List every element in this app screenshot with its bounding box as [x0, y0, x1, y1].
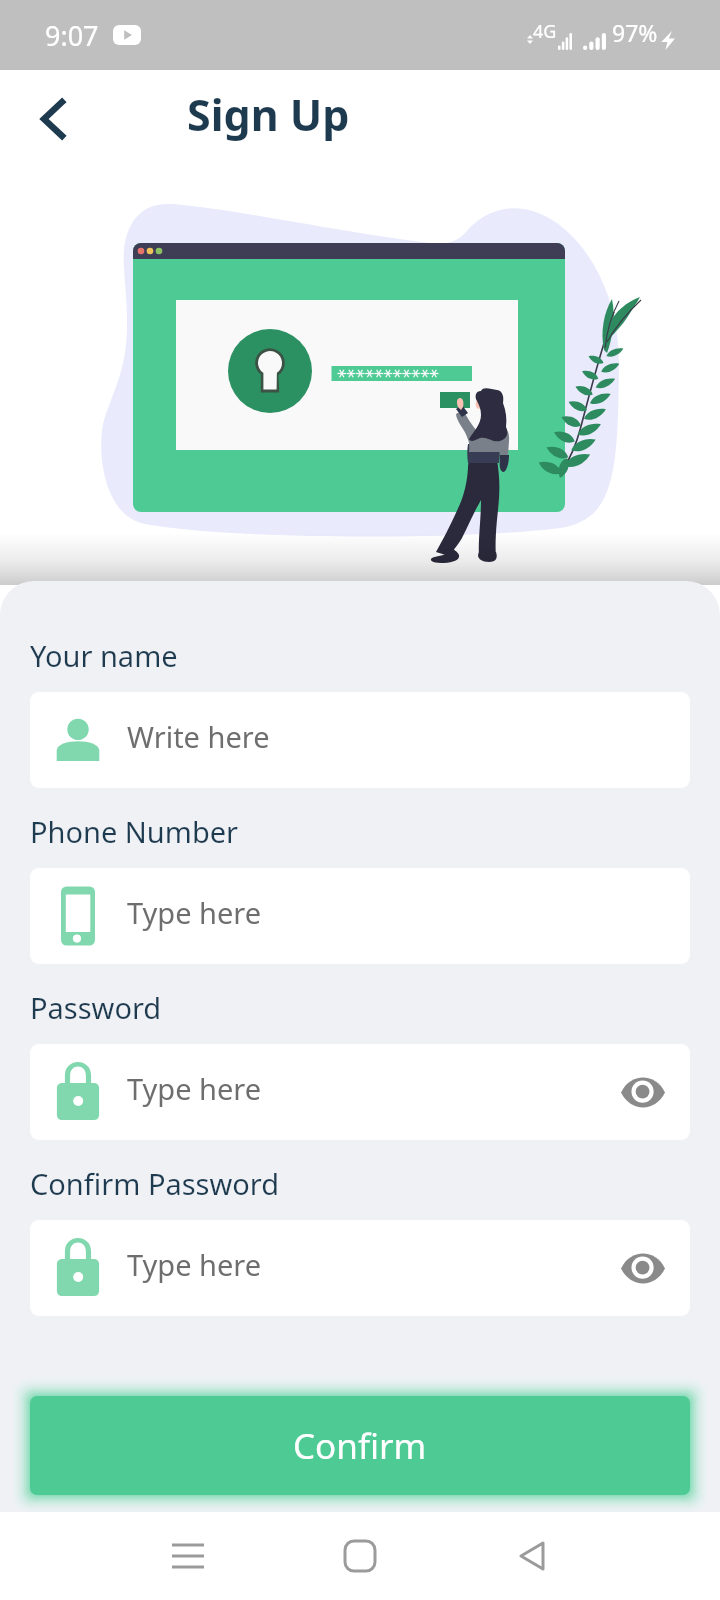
button[interactable]: Back [496, 1512, 568, 1600]
button[interactable]: Type here [30, 1220, 690, 1316]
staticText: Type here [127, 1069, 262, 1108]
staticText: Phone Number [30, 812, 239, 851]
button[interactable]: Home [324, 1512, 396, 1600]
button[interactable]: Type here [30, 868, 690, 964]
staticText: Type here [127, 893, 262, 932]
staticText: 9:07 [45, 17, 99, 54]
button[interactable]: Write here [30, 692, 690, 788]
button[interactable]: Confirm [30, 1396, 690, 1495]
button[interactable]: Show password [614, 1063, 672, 1121]
staticText: Your name [30, 636, 178, 675]
staticText: Password [30, 988, 162, 1027]
staticText: 97% [612, 17, 658, 48]
staticText: 4G [533, 19, 557, 44]
button[interactable]: Back [18, 91, 86, 159]
staticText: Type here [127, 1245, 262, 1284]
staticText: Confirm Password [30, 1164, 280, 1203]
button[interactable]: Type here [30, 1044, 690, 1140]
button[interactable]: Show password [614, 1239, 672, 1297]
button[interactable]: Recent apps [152, 1512, 224, 1600]
staticText: Sign Up [187, 85, 350, 144]
staticText: Write here [127, 717, 270, 756]
staticText: Confirm [293, 1422, 427, 1470]
